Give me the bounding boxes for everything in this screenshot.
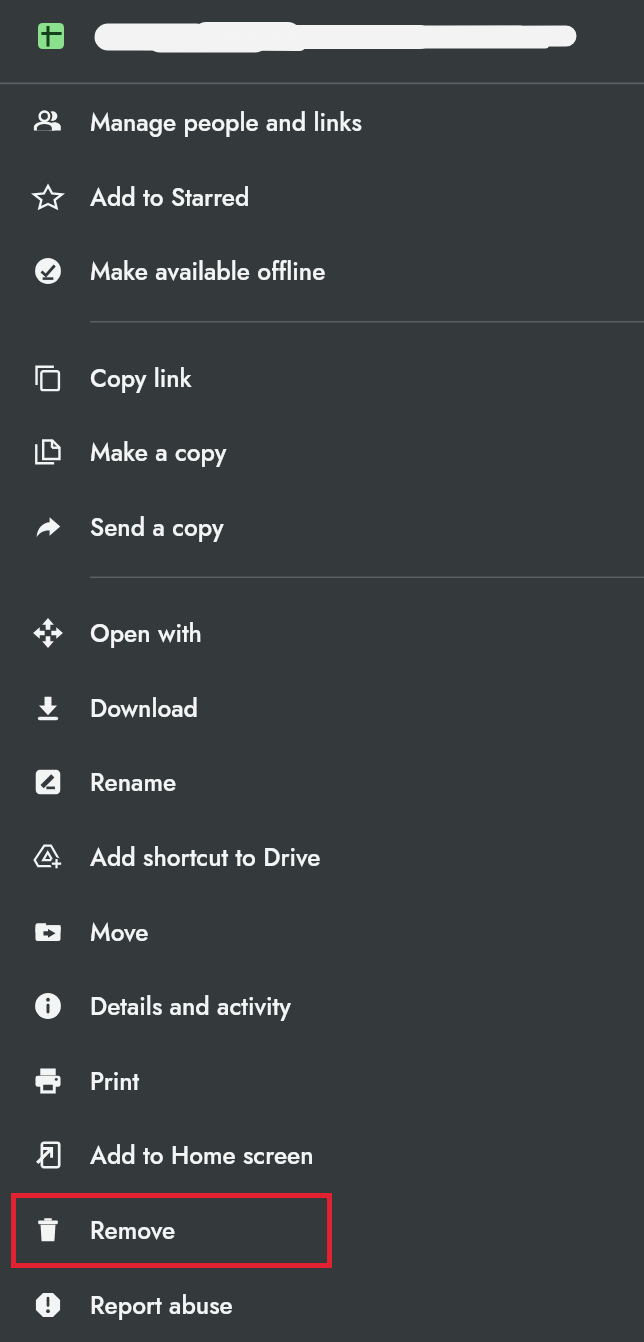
staticText: Make available offline: [90, 254, 326, 289]
button[interactable]: Move: [0, 894, 644, 969]
staticText: Copy link: [90, 361, 192, 396]
button[interactable]: Print: [0, 1043, 644, 1118]
staticText: Move: [90, 915, 149, 950]
staticText: Rename: [90, 765, 177, 800]
button[interactable]: Make available offline: [0, 233, 644, 308]
staticText: Add shortcut to Drive: [90, 840, 321, 875]
button[interactable]: Details and activity: [0, 968, 644, 1043]
staticText: Details and activity: [90, 989, 291, 1024]
button[interactable]: Remove: [0, 1192, 644, 1267]
button[interactable]: Rename: [0, 744, 644, 819]
staticText: Send a copy: [90, 510, 224, 545]
button[interactable]: Manage people and links: [0, 84, 644, 159]
button[interactable]: Add shortcut to Drive: [0, 819, 644, 894]
button[interactable]: Copy link: [0, 340, 644, 415]
button[interactable]: Download: [0, 670, 644, 745]
button[interactable]: Add to Home screen: [0, 1117, 644, 1192]
staticText: Print: [90, 1064, 140, 1099]
button[interactable]: Spreadsheet file: [0, 0, 644, 84]
staticText: Download: [90, 691, 198, 726]
staticText: Manage people and links: [90, 105, 362, 140]
staticText: Remove: [90, 1213, 176, 1248]
button[interactable]: Report abuse: [0, 1267, 644, 1342]
button[interactable]: Open with: [0, 595, 644, 670]
staticText: Open with: [90, 616, 202, 651]
button[interactable]: Make a copy: [0, 414, 644, 489]
staticText: Add to Home screen: [90, 1138, 314, 1173]
staticText: Make a copy: [90, 435, 227, 470]
staticText: Add to Starred: [90, 180, 250, 215]
button[interactable]: Add to Starred: [0, 159, 644, 234]
button[interactable]: Send a copy: [0, 489, 644, 564]
staticText: Report abuse: [90, 1288, 233, 1323]
